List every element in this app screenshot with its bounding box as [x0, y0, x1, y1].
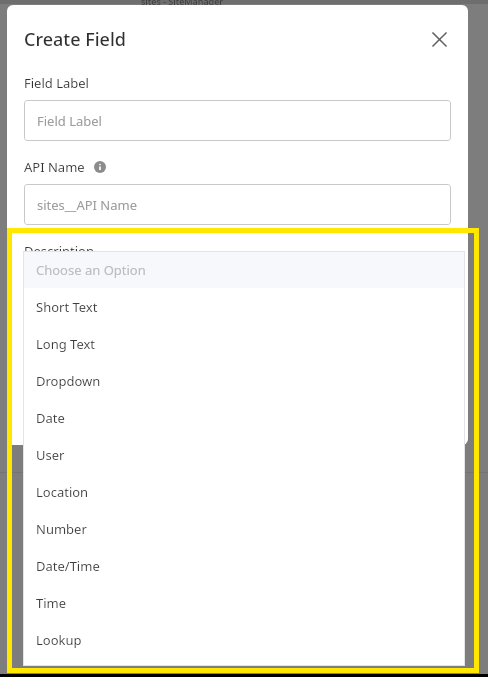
staticText: Location [36, 483, 89, 501]
staticText: Create Field [24, 27, 126, 52]
staticText: Field Label [24, 74, 89, 92]
button[interactable]: Close [426, 26, 452, 52]
button[interactable]: Date/Time [23, 547, 465, 584]
staticText: Number [36, 520, 87, 538]
staticText: API Name [24, 158, 85, 176]
staticText: Lookup [36, 631, 82, 649]
staticText: User [36, 446, 65, 464]
button[interactable]: Choose an Option [23, 251, 465, 288]
button[interactable]: Number [23, 510, 465, 547]
button[interactable]: Short Text [23, 288, 465, 325]
button[interactable]: sites__API Name [24, 184, 451, 225]
button[interactable]: Time [23, 584, 465, 621]
button[interactable]: User [23, 436, 465, 473]
button[interactable]: Dropdown [23, 362, 465, 399]
button[interactable]: Location [23, 473, 465, 510]
staticText: Time [36, 594, 67, 612]
staticText: Date/Time [36, 557, 100, 575]
staticText: Long Text [36, 335, 96, 353]
staticText: Field Label [37, 112, 102, 130]
button[interactable]: Date [23, 399, 465, 436]
staticText: Date [36, 409, 65, 427]
staticText: Dropdown [36, 372, 101, 390]
staticText: Description [24, 242, 94, 260]
staticText: sites - SiteManager [141, 0, 224, 7]
staticText: sites__API Name [37, 196, 137, 214]
button[interactable]: API Name help [93, 160, 107, 174]
button[interactable]: Long Text [23, 325, 465, 362]
staticText: Short Text [36, 298, 98, 316]
staticText: Choose an Option [36, 261, 146, 279]
button[interactable]: Field Label [24, 100, 451, 141]
button[interactable]: Lookup [23, 621, 465, 658]
